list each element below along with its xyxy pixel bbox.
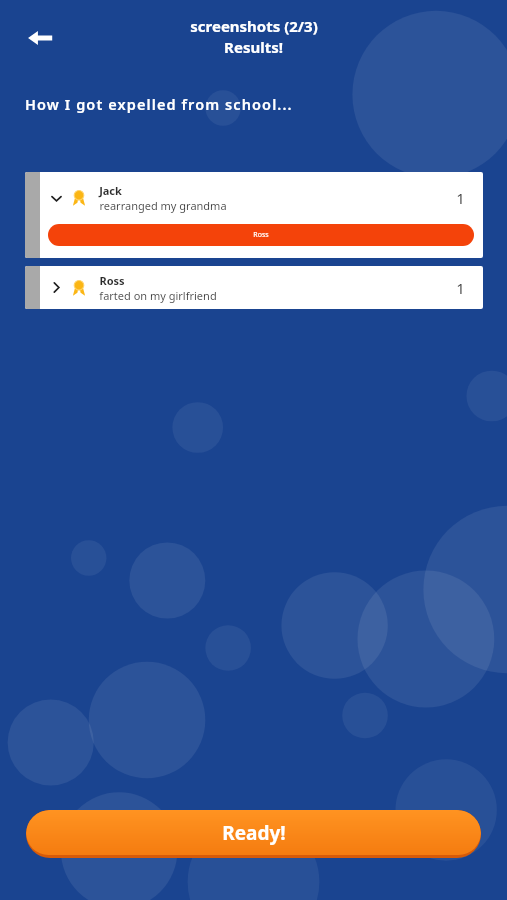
staticText: How I got expelled from school...: [25, 94, 293, 114]
button[interactable]: Back: [22, 20, 58, 56]
staticText: Ready!: [222, 820, 286, 846]
button[interactable]: Ross: [48, 224, 474, 246]
button[interactable]: Ross: [25, 266, 483, 309]
button[interactable]: Jack: [25, 172, 483, 258]
staticText: Ross: [253, 230, 269, 240]
staticText: rearranged my grandma: [99, 198, 227, 213]
staticText: Ross: [99, 273, 125, 288]
staticText: 1: [456, 278, 465, 298]
staticText: 1: [456, 188, 465, 208]
staticText: screenshots (2/3): [190, 16, 318, 36]
staticText: Results!: [224, 37, 283, 57]
staticText: Jack: [99, 183, 122, 198]
button[interactable]: Ready!: [26, 810, 481, 858]
staticText: farted on my girlfriend: [99, 288, 217, 303]
